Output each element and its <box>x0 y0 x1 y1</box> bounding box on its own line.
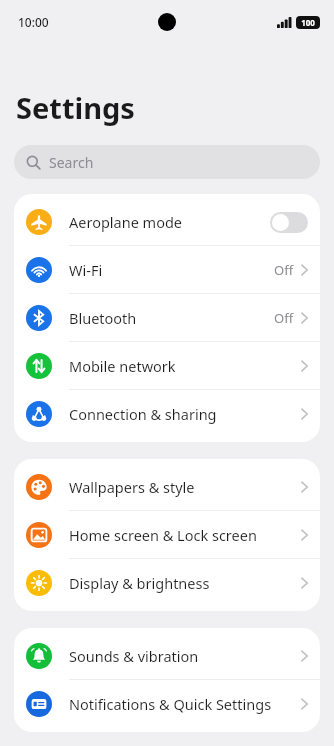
staticText: Wi-Fi <box>69 260 274 280</box>
button[interactable]: Connection & sharing <box>14 390 320 438</box>
staticText: Off <box>274 261 294 279</box>
staticText: Aeroplane mode <box>69 212 270 232</box>
staticText: 10:00 <box>18 14 49 30</box>
staticText: Search <box>49 153 94 172</box>
button[interactable]: Home screen & Lock screen <box>14 511 320 559</box>
staticText: Wallpapers & style <box>69 477 301 497</box>
staticText: 100 <box>301 17 315 28</box>
staticText: Display & brightness <box>69 573 301 593</box>
button[interactable]: Mobile network <box>14 342 320 390</box>
button[interactable]: Bluetooth <box>14 294 320 342</box>
button[interactable]: Display & brightness <box>14 559 320 607</box>
button[interactable]: Sounds & vibration <box>14 632 320 680</box>
staticText: Home screen & Lock screen <box>69 525 301 545</box>
button[interactable]: Wi-Fi <box>14 246 320 294</box>
staticText: Sounds & vibration <box>69 646 301 666</box>
staticText: Settings <box>16 88 135 127</box>
staticText: Connection & sharing <box>69 404 301 424</box>
staticText: Mobile network <box>69 356 301 376</box>
button[interactable]: Aeroplane mode toggle <box>270 212 308 233</box>
button[interactable]: Search <box>14 145 320 179</box>
button[interactable]: Wallpapers & style <box>14 463 320 511</box>
staticText: Off <box>274 309 294 327</box>
staticText: Bluetooth <box>69 308 274 328</box>
button[interactable]: Aeroplane mode <box>14 198 320 246</box>
staticText: Notifications & Quick Settings <box>69 694 301 714</box>
button[interactable]: Notifications & Quick Settings <box>14 680 320 728</box>
